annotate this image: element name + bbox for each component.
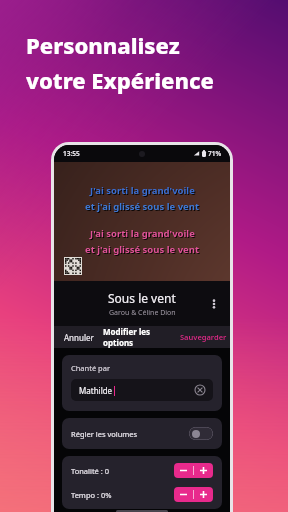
button[interactable]: Annuler: [54, 326, 103, 348]
staticText: 71%: [208, 149, 222, 158]
staticText: Sous le vent: [108, 290, 176, 306]
staticText: J'ai sorti la grand'voile: [91, 228, 196, 241]
button[interactable]: Régler les volumes: [62, 418, 222, 449]
staticText: et j'ai glissé sous le vent: [85, 243, 200, 256]
button[interactable]: Augmenter Tempo : 0%: [194, 487, 213, 502]
staticText: Chanté par: [71, 363, 111, 373]
staticText: Annuler: [64, 332, 94, 343]
staticText: 13:55: [63, 149, 80, 158]
staticText: et j'ai glissé sous le vent: [86, 201, 201, 214]
button[interactable]: Modifier les options: [103, 326, 176, 348]
staticText: Modifier les options: [103, 326, 176, 348]
staticText: J'ai sorti la grand'voile: [90, 227, 195, 240]
staticText: Régler les volumes: [71, 429, 138, 439]
button[interactable]: Mathilde: [71, 379, 213, 401]
button[interactable]: Diminuer Tonalité : 0: [174, 463, 193, 478]
button[interactable]: Sauvegarder: [176, 326, 230, 348]
staticText: Tempo : 0%: [71, 490, 112, 500]
staticText: J'ai sorti la grand'voile: [91, 185, 196, 198]
staticText: Tonalité : 0: [71, 466, 110, 476]
staticText: J'ai sorti la grand'voile: [90, 184, 195, 197]
staticText: Personnalisez: [26, 30, 180, 60]
staticText: votre Expérience: [26, 65, 214, 95]
staticText: et j'ai glissé sous le vent: [85, 200, 200, 213]
staticText: et j'ai glissé sous le vent: [86, 244, 201, 257]
button[interactable]: Augmenter Tonalité : 0: [194, 463, 213, 478]
button[interactable]: Plus d'options: [204, 294, 224, 314]
button[interactable]: Diminuer Tempo : 0%: [174, 487, 193, 502]
staticText: Garou & Céline Dion: [109, 308, 176, 318]
button[interactable]: Effacer: [193, 383, 207, 397]
staticText: Mathilde: [79, 385, 113, 396]
staticText: Sauvegarder: [180, 332, 227, 342]
